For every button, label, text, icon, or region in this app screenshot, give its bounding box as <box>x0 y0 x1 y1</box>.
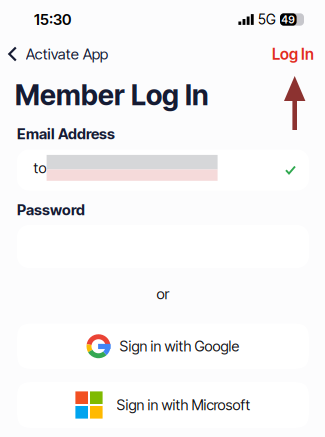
staticText: 5G <box>258 11 276 28</box>
button[interactable]: Sign in with Microsoft <box>17 382 309 428</box>
staticText: Sign in with Microsoft <box>117 396 251 414</box>
staticText: Password <box>17 201 85 219</box>
staticText: 15:30 <box>34 10 71 29</box>
staticText: Log In <box>272 45 314 63</box>
staticText: Member Log In <box>15 78 209 112</box>
staticText: 49 <box>281 13 295 26</box>
button[interactable]: Log In <box>260 39 325 69</box>
staticText: Email Address <box>17 125 115 143</box>
button[interactable]: Activate App <box>0 39 118 69</box>
staticText: Activate App <box>26 45 108 63</box>
staticText: or <box>156 285 169 303</box>
staticText: Sign in with Google <box>119 337 239 355</box>
staticText: to <box>34 159 47 177</box>
button[interactable]: Sign in with Google <box>17 323 309 369</box>
